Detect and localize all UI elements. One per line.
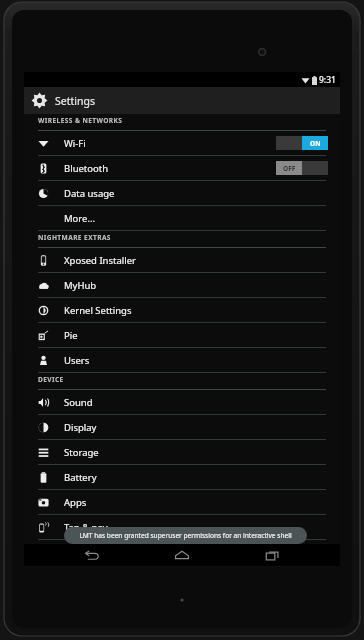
staticText: Apps (64, 496, 87, 509)
button[interactable]: Pie (24, 323, 340, 347)
button[interactable]: Wi-Fi (24, 131, 340, 155)
button[interactable]: Home (160, 544, 204, 566)
button[interactable]: More... (24, 206, 340, 230)
button[interactable]: Back (70, 544, 114, 566)
staticText: DEVICE (38, 375, 64, 384)
button[interactable]: Kernel Settings (24, 298, 340, 322)
button[interactable]: Display (24, 415, 340, 439)
button[interactable]: Tap & pay (24, 515, 340, 539)
staticText: Users (64, 354, 90, 367)
staticText: NIGHTMARE EXTRAS (38, 233, 111, 242)
button[interactable]: Settings (24, 87, 340, 114)
button[interactable]: Users (24, 348, 340, 372)
staticText: Tap & pay (64, 521, 108, 534)
staticText: Data usage (64, 187, 115, 200)
button[interactable]: Recent apps (250, 544, 294, 566)
button[interactable]: Bluetooth off (276, 161, 328, 175)
staticText: 9:31 (319, 74, 336, 86)
staticText: OFF (283, 164, 296, 173)
staticText: Xposed Installer (64, 254, 136, 267)
staticText: WIRELESS & NETWORKS (38, 116, 123, 125)
staticText: ON (310, 139, 321, 148)
staticText: Battery (64, 471, 97, 484)
staticText: More... (64, 212, 96, 225)
staticText: Display (64, 421, 97, 434)
button[interactable]: Xposed Installer (24, 248, 340, 272)
button[interactable]: MyHub (24, 273, 340, 297)
button[interactable]: Data usage (24, 181, 340, 205)
staticText: Settings (55, 94, 95, 108)
staticText: Sound (64, 396, 93, 409)
button[interactable]: Apps (24, 490, 340, 514)
staticText: Wi-Fi (64, 137, 86, 150)
button[interactable]: Wi-Fi on (276, 136, 328, 150)
staticText: Storage (64, 446, 99, 459)
staticText: LMT has been granted superuser permissio… (79, 531, 292, 540)
staticText: Kernel Settings (64, 304, 132, 317)
button[interactable]: Sound (24, 390, 340, 414)
staticText: MyHub (64, 279, 97, 292)
button[interactable]: Battery (24, 465, 340, 489)
button[interactable]: Storage (24, 440, 340, 464)
staticText: Bluetooth (64, 162, 109, 175)
staticText: Pie (64, 329, 78, 342)
button[interactable]: Bluetooth (24, 156, 340, 180)
